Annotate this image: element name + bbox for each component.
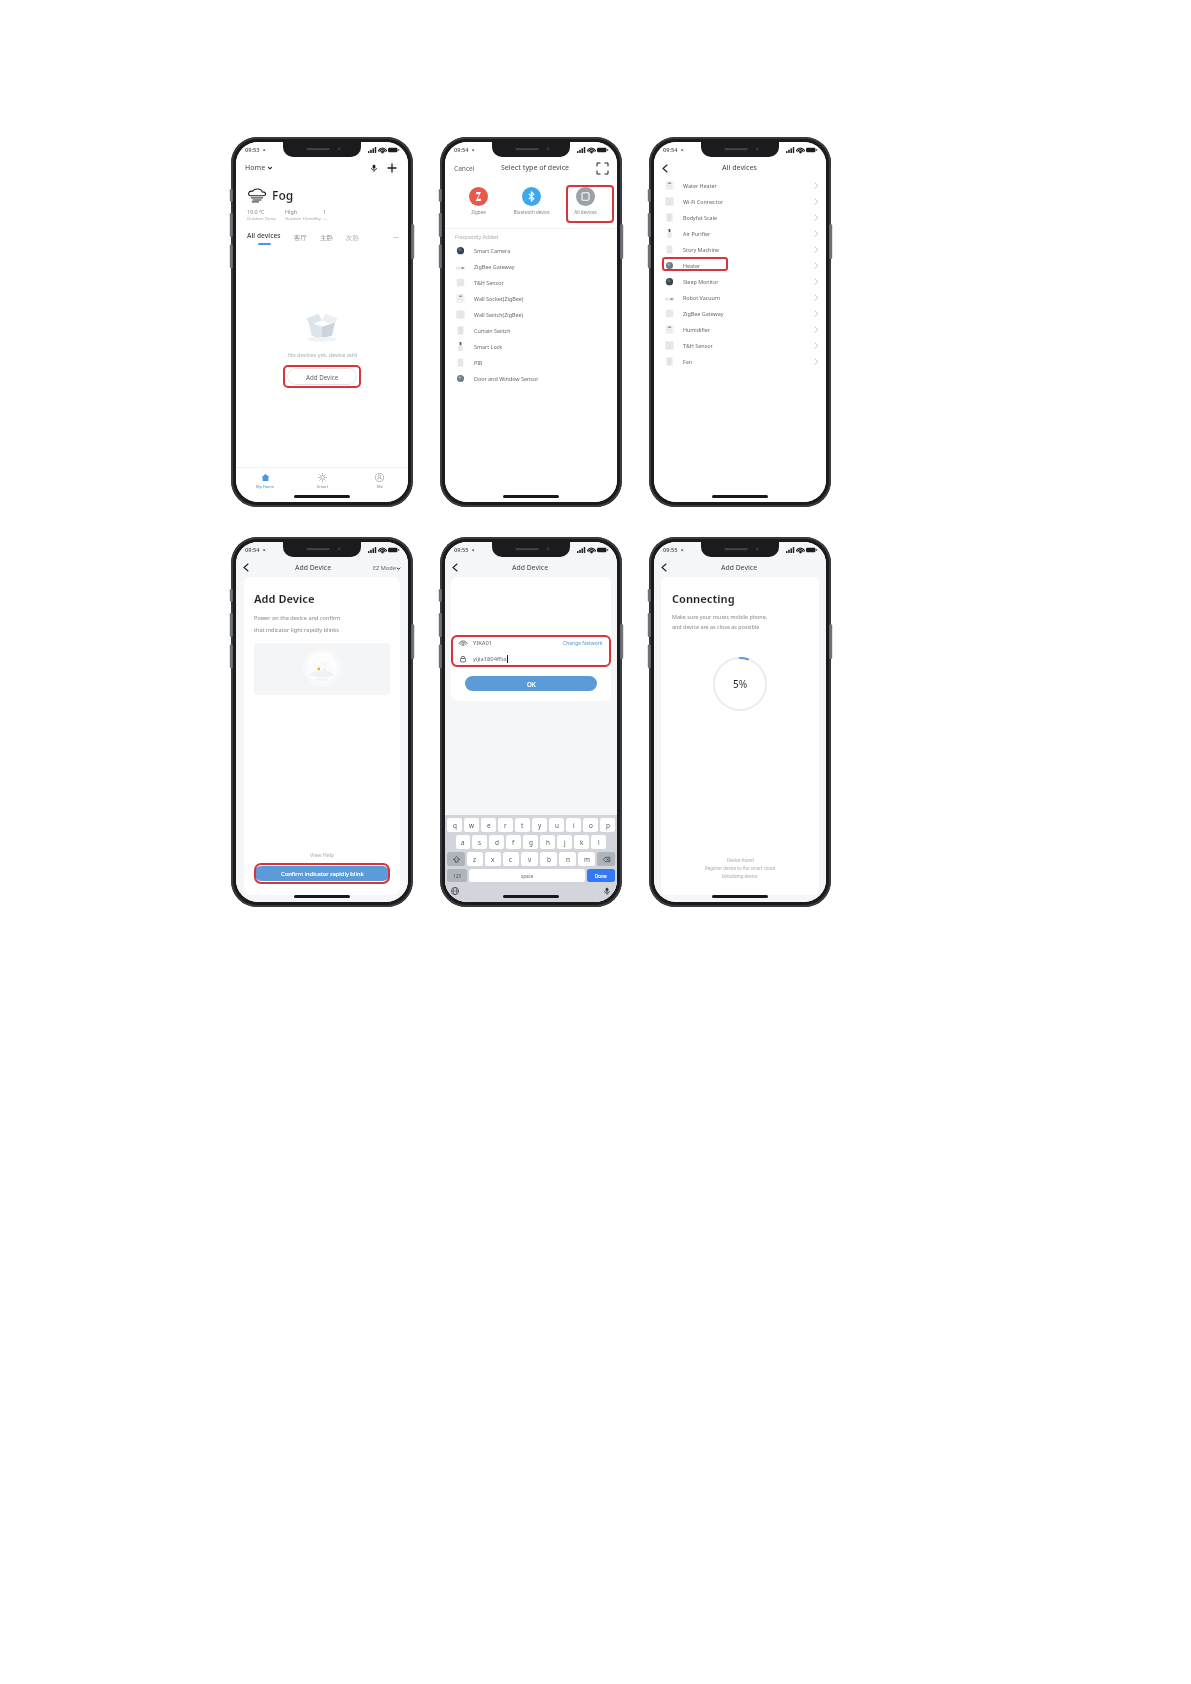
staticText: 1	[323, 208, 327, 215]
staticText: g	[529, 838, 533, 847]
button[interactable]: 123	[447, 869, 467, 882]
button[interactable]: EZ Mode	[373, 564, 400, 572]
staticText: q	[453, 821, 457, 830]
button[interactable]: Fan	[654, 353, 826, 369]
staticText: a	[461, 838, 465, 847]
button[interactable]: My Home	[236, 468, 294, 494]
staticText: 09:54	[454, 146, 469, 154]
staticText: t	[521, 821, 524, 830]
button[interactable]: PIR	[445, 354, 617, 370]
button[interactable]: ···	[393, 233, 399, 243]
button[interactable]: Back	[244, 562, 255, 573]
button[interactable]: View Help	[310, 851, 334, 858]
button[interactable]: Done	[587, 869, 615, 882]
button[interactable]: k	[574, 835, 589, 849]
staticText: r	[504, 821, 507, 830]
button[interactable]: T&H Sensor	[445, 274, 617, 290]
button[interactable]: Me	[351, 468, 408, 494]
button[interactable]: Air Purifier	[654, 225, 826, 241]
button[interactable]: OK	[465, 676, 597, 691]
button[interactable]: t	[515, 818, 530, 832]
staticText: e	[487, 821, 491, 830]
staticText: k	[580, 838, 584, 847]
staticText: space	[521, 873, 534, 879]
button[interactable]: c	[503, 852, 519, 866]
button[interactable]: Smart Lock	[445, 338, 617, 354]
button[interactable]: Door and Window Sensor	[445, 370, 617, 386]
staticText: 09:55	[663, 546, 678, 554]
button[interactable]: g	[523, 835, 538, 849]
button[interactable]: n	[559, 852, 576, 866]
button[interactable]: p	[600, 818, 615, 832]
staticText: Fog	[272, 187, 294, 203]
button[interactable]: Language	[451, 887, 459, 895]
staticText: ZigBee Gateway	[474, 263, 515, 270]
button[interactable]: h	[540, 835, 555, 849]
button[interactable]: All devices	[560, 184, 610, 218]
button[interactable]: Home	[245, 163, 272, 173]
button[interactable]: space	[469, 869, 585, 882]
button[interactable]: Water Heater	[654, 177, 826, 193]
button[interactable]: o	[583, 818, 598, 832]
button[interactable]: r	[498, 818, 513, 832]
button[interactable]: b	[540, 852, 557, 866]
button[interactable]: q	[447, 818, 462, 832]
button[interactable]: Smart	[294, 468, 351, 494]
button[interactable]: Scan	[597, 163, 608, 174]
button[interactable]: w	[464, 818, 479, 832]
button[interactable]: yijia1804ffss	[459, 651, 603, 667]
button[interactable]: Humidifier	[654, 321, 826, 337]
button[interactable]: l	[591, 835, 606, 849]
button[interactable]: Voice	[367, 161, 381, 175]
button[interactable]: Story Machine	[654, 241, 826, 257]
button[interactable]: Zigbee	[453, 184, 503, 218]
button[interactable]: Sleep Monitor	[654, 273, 826, 289]
button[interactable]: e	[481, 818, 496, 832]
button[interactable]: z	[467, 852, 483, 866]
button[interactable]: Smart Camera	[445, 242, 617, 258]
button[interactable]: a	[456, 835, 470, 849]
button[interactable]: Cancel	[454, 164, 475, 173]
button[interactable]: All devices	[247, 231, 281, 245]
button[interactable]: Bodyfat Scale	[654, 209, 826, 225]
button[interactable]: Wall Switch(ZigBee)	[445, 306, 617, 322]
button[interactable]: x	[485, 852, 501, 866]
button[interactable]: i	[566, 818, 581, 832]
button[interactable]: u	[549, 818, 564, 832]
button[interactable]: Heater	[654, 257, 826, 273]
button[interactable]: y	[532, 818, 547, 832]
staticText: Confirm indicator rapidly blink	[281, 870, 364, 878]
button[interactable]: d	[489, 835, 504, 849]
button[interactable]: 次卧	[346, 234, 359, 242]
button[interactable]: s	[472, 835, 487, 849]
button[interactable]: Wi-Fi Connector	[654, 193, 826, 209]
button[interactable]: Confirm indicator rapidly blink	[254, 866, 390, 881]
button[interactable]: Add	[385, 161, 399, 175]
button[interactable]: Bluetooth device	[506, 184, 556, 218]
staticText: Add Device	[295, 563, 332, 572]
button[interactable]: Shift	[447, 852, 465, 866]
button[interactable]: 主卧	[320, 234, 333, 242]
button[interactable]: f	[506, 835, 521, 849]
button[interactable]: Add Device	[287, 368, 357, 385]
staticText: i	[573, 821, 575, 830]
button[interactable]: ZigBee Gateway	[654, 305, 826, 321]
button[interactable]: m	[578, 852, 595, 866]
button[interactable]: v	[521, 852, 538, 866]
button[interactable]: Back	[663, 162, 675, 174]
button[interactable]: YIKA01	[459, 635, 603, 651]
button[interactable]: ZigBee Gateway	[445, 258, 617, 274]
button[interactable]: Back	[453, 562, 464, 573]
button[interactable]: Backspace	[597, 852, 615, 866]
button[interactable]: Curtain Switch	[445, 322, 617, 338]
button[interactable]: T&H Sensor	[654, 337, 826, 353]
button[interactable]: Wall Socket(ZigBee)	[445, 290, 617, 306]
button[interactable]: 客厅	[294, 234, 307, 242]
staticText: Add Device	[306, 373, 339, 381]
button[interactable]: Back	[662, 562, 673, 573]
button[interactable]: Dictation	[603, 887, 611, 895]
staticText: Bodyfat Scale	[683, 214, 718, 221]
button[interactable]: j	[557, 835, 572, 849]
staticText: Change Network	[563, 640, 603, 647]
button[interactable]: Robot Vacuum	[654, 289, 826, 305]
